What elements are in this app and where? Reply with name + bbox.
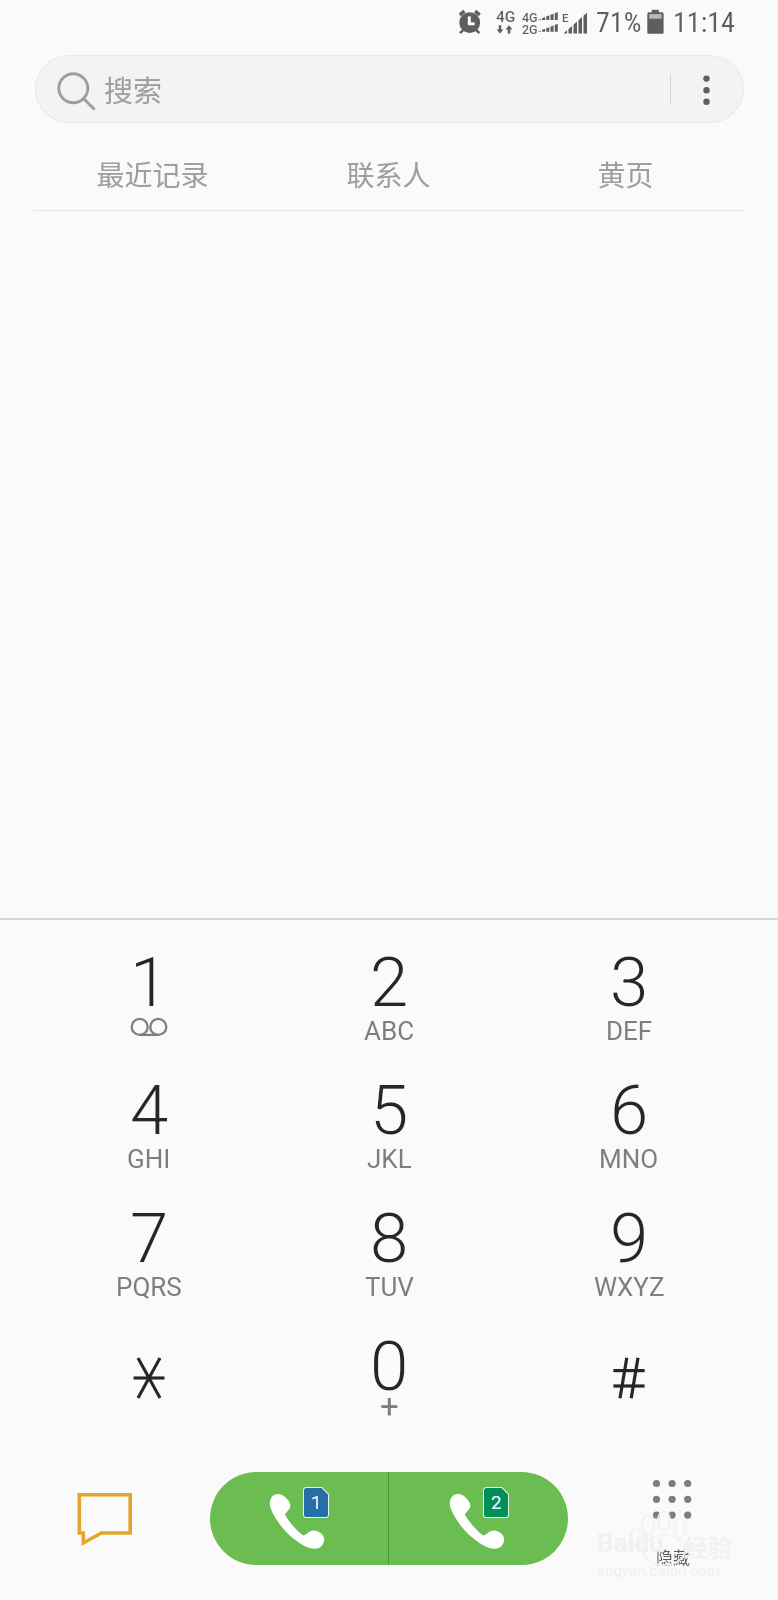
button[interactable]: 1 xyxy=(29,940,269,1068)
button[interactable]: 4 xyxy=(29,1068,269,1196)
button[interactable] xyxy=(509,1324,749,1452)
staticText: 2 xyxy=(491,1491,502,1513)
staticText: + xyxy=(380,1387,399,1426)
staticText: 9 xyxy=(610,1198,649,1279)
button[interactable]: 7 xyxy=(29,1196,269,1324)
button[interactable]: 5 xyxy=(269,1068,509,1196)
button[interactable]: 6 xyxy=(509,1068,749,1196)
button[interactable] xyxy=(29,1324,269,1452)
staticText: ABC xyxy=(364,1016,415,1046)
staticText: 0 xyxy=(370,1326,409,1407)
staticText: 隐藏 xyxy=(656,1544,690,1569)
staticText: 4G xyxy=(522,10,538,25)
button[interactable]: 3 xyxy=(509,940,749,1068)
staticText: DEF xyxy=(606,1016,653,1046)
staticText: Baidu xyxy=(597,1528,664,1558)
button[interactable]: 搜索 xyxy=(35,55,744,123)
staticText: 1 xyxy=(130,942,169,1023)
staticText: 3 xyxy=(610,942,649,1023)
staticText: jingyan.baidu.com xyxy=(598,1562,720,1580)
button[interactable]: 黄页 xyxy=(507,145,744,203)
staticText: 2 xyxy=(370,942,409,1023)
staticText: 4 xyxy=(130,1070,169,1151)
staticText: PQRS xyxy=(116,1272,182,1302)
staticText: WXYZ xyxy=(594,1272,665,1302)
staticText: TUV xyxy=(365,1272,414,1302)
button[interactable]: 9 xyxy=(509,1196,749,1324)
staticText: GHI xyxy=(127,1144,171,1174)
staticText: 搜索 xyxy=(104,68,163,110)
staticText: JKL xyxy=(367,1144,412,1174)
staticText: 2G xyxy=(522,22,538,37)
staticText: 5 xyxy=(370,1070,409,1151)
button[interactable]: Send message xyxy=(60,1476,150,1566)
button[interactable]: 0 xyxy=(269,1324,509,1452)
staticText: 联系人 xyxy=(346,154,431,195)
button[interactable]: Call with SIM 1 xyxy=(210,1472,388,1565)
button[interactable]: Hide keypad xyxy=(628,1466,718,1556)
button[interactable]: Call with SIM 2 xyxy=(389,1472,568,1565)
button[interactable]: 2 xyxy=(269,940,509,1068)
staticText: 8 xyxy=(370,1198,409,1279)
staticText: 最近记录 xyxy=(96,154,209,195)
staticText: 6 xyxy=(610,1070,649,1151)
staticText: 1 xyxy=(311,1491,322,1513)
staticText: 黄页 xyxy=(597,154,654,195)
button[interactable]: 联系人 xyxy=(270,145,507,203)
staticText: 7 xyxy=(130,1198,169,1279)
staticText: 经验 xyxy=(684,1529,732,1564)
staticText: 4G xyxy=(496,8,516,26)
staticText: MNO xyxy=(599,1144,659,1174)
staticText: E xyxy=(562,11,569,24)
staticText: 71% xyxy=(596,6,642,39)
button[interactable]: 8 xyxy=(269,1196,509,1324)
button[interactable]: More options xyxy=(668,55,744,123)
button[interactable]: 最近记录 xyxy=(34,145,270,203)
staticText: 11:14 xyxy=(673,6,735,39)
